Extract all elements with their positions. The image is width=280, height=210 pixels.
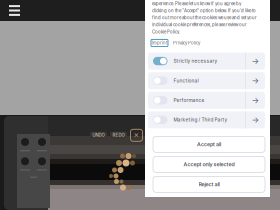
staticText: → (251, 76, 259, 85)
staticText: Functional (173, 78, 198, 84)
staticText: Imprint (152, 40, 167, 46)
button[interactable]: Strictly necessary (148, 53, 265, 70)
button[interactable]: Accept all (153, 136, 265, 152)
staticText: REDO (112, 133, 124, 138)
staticText: Performance (173, 97, 204, 103)
staticText: → (251, 95, 259, 105)
button[interactable]: Privacy Policy (173, 40, 200, 46)
staticText: find out more about the cookies we use a… (152, 15, 257, 20)
button[interactable]: Accept only selected (153, 156, 265, 172)
staticText: Privacy Policy (173, 40, 200, 46)
staticText: individual cookie preferences, please re… (152, 22, 247, 27)
staticText: Marketing / Third Party (173, 117, 227, 123)
staticText: → (251, 115, 259, 125)
staticText: → (251, 56, 259, 66)
staticText: clicking on the "Accept" option below. I… (152, 8, 256, 13)
staticText: Accept only selected (183, 161, 234, 168)
button[interactable]: Reject all (153, 176, 265, 192)
staticText: Reject all (198, 181, 219, 188)
button[interactable]: Close (130, 129, 143, 142)
button[interactable]: Menu (0, 1, 29, 20)
staticText: Strictly necessary (173, 58, 217, 64)
staticText: Accept all (197, 141, 221, 148)
button[interactable]: Marketing / Third Party (148, 111, 265, 128)
button[interactable]: Performance (148, 92, 265, 109)
staticText: Cookie Policy. (152, 29, 180, 34)
staticText: UNDO (92, 133, 104, 138)
staticText: experience. Please let us know if you ag… (152, 1, 241, 6)
button[interactable]: UNDO (90, 132, 107, 139)
button[interactable]: REDO (110, 132, 127, 139)
button[interactable]: Imprint (151, 39, 168, 47)
staticText: ✕ (133, 131, 139, 139)
button[interactable]: Functional (148, 72, 265, 89)
